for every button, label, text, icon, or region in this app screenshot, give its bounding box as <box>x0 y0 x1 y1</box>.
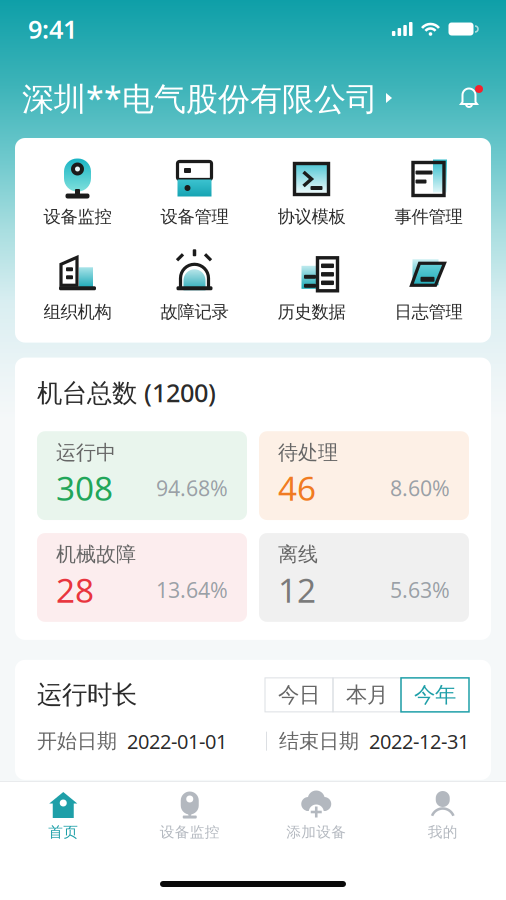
staticText: 故障记录 <box>160 301 228 323</box>
button[interactable]: 日志管理 <box>370 249 487 327</box>
staticText: 2022-12-31 <box>359 728 469 754</box>
staticText: 12 <box>278 568 316 612</box>
button[interactable]: 故障记录 <box>136 249 253 327</box>
staticText: 设备监控 <box>160 823 220 841</box>
staticText: 深圳**电气股份有限公司 <box>22 77 378 119</box>
staticText: 日志管理 <box>394 301 462 323</box>
button[interactable]: 今日 <box>265 678 333 712</box>
staticText: 协议模板 <box>277 206 345 227</box>
button[interactable]: 设备管理 <box>136 154 253 231</box>
staticText: 今日 <box>278 682 320 708</box>
staticText: 13.64% <box>156 576 228 604</box>
staticText: 机械故障 <box>56 542 136 567</box>
staticText: 运行时长 <box>37 679 137 710</box>
button[interactable]: 历史数据 <box>253 249 370 327</box>
button[interactable]: 设备监控 <box>19 154 136 231</box>
button[interactable]: 我的 <box>379 791 506 841</box>
staticText: 离线 <box>278 542 318 567</box>
button[interactable]: 今年 <box>401 678 469 712</box>
staticText: 事件管理 <box>394 206 462 227</box>
staticText: 94.68% <box>156 474 228 502</box>
staticText: 机台总数 (1200) <box>37 376 216 409</box>
staticText: 46 <box>278 466 316 510</box>
staticText: 结束日期 <box>267 729 359 753</box>
staticText: 308 <box>56 466 113 510</box>
button[interactable]: 首页 <box>0 791 126 841</box>
staticText: 运行中 <box>56 440 116 465</box>
staticText: 添加设备 <box>286 823 346 841</box>
staticText: 组织机构 <box>43 301 111 323</box>
button[interactable]: 本月 <box>333 678 401 712</box>
staticText: 设备监控 <box>43 206 111 227</box>
staticText: 待处理 <box>278 440 338 465</box>
staticText: 历史数据 <box>277 301 345 323</box>
staticText: 本月 <box>346 682 388 708</box>
staticText: 28 <box>56 568 94 612</box>
button[interactable]: 事件管理 <box>370 154 487 231</box>
button[interactable]: 组织机构 <box>19 249 136 327</box>
staticText: 9:41 <box>28 12 77 46</box>
staticText: 5.63% <box>390 576 450 604</box>
staticText: 8.60% <box>390 474 450 502</box>
button[interactable]: 深圳**电气股份有限公司 <box>22 77 392 119</box>
staticText: 设备管理 <box>160 206 228 227</box>
staticText: 2022-01-01 <box>117 728 227 754</box>
staticText: 我的 <box>428 823 458 841</box>
staticText: 首页 <box>48 823 78 841</box>
button[interactable]: 设备监控 <box>126 791 253 841</box>
button[interactable]: Notifications <box>454 83 484 113</box>
staticText: 开始日期 <box>37 729 117 753</box>
button[interactable]: 添加设备 <box>253 791 379 841</box>
staticText: 今年 <box>414 682 456 708</box>
button[interactable]: 协议模板 <box>253 154 370 231</box>
